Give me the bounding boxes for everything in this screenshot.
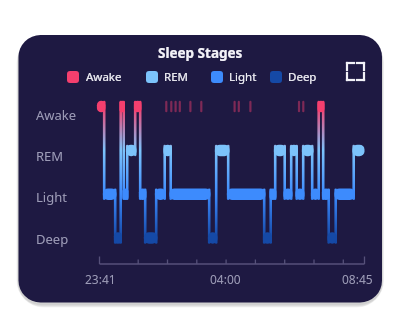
button[interactable]: REM <box>146 71 158 83</box>
button[interactable]: Light <box>211 71 223 83</box>
button[interactable]: Expand chart <box>346 62 365 81</box>
staticText: 04:00 <box>210 271 241 287</box>
staticText: REM <box>164 69 188 85</box>
staticText: Awake <box>86 69 122 85</box>
staticText: REM <box>36 147 64 165</box>
staticText: Light <box>229 69 257 85</box>
button[interactable]: Deep <box>270 71 282 83</box>
staticText: Deep <box>36 230 69 248</box>
staticText: 23:41 <box>85 271 116 287</box>
staticText: Deep <box>288 69 317 85</box>
staticText: 08:45 <box>342 271 373 287</box>
staticText: Awake <box>36 106 77 124</box>
staticText: Light <box>36 188 67 206</box>
button[interactable]: Awake <box>67 71 79 83</box>
staticText: Sleep Stages <box>158 44 243 62</box>
